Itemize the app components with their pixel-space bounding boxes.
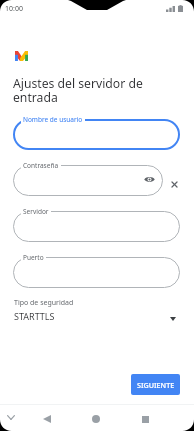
staticText: Tipo de seguridad [14,298,74,308]
button[interactable]: Tipo de seguridad [0,294,194,326]
button[interactable]: Inicio [84,407,108,431]
button[interactable]: Ocultar teclado [1,408,20,427]
button[interactable] [13,119,180,150]
button[interactable] [13,165,163,196]
staticText: Nombre de usuario [23,115,83,124]
staticText: Ajustes del servidor de entrada [13,75,154,106]
staticText: STARTTLS [14,310,55,322]
button[interactable]: Borrar [170,180,179,189]
button[interactable]: Atrás [35,407,59,431]
button[interactable] [13,211,180,242]
button[interactable]: SIGUIENTE [131,374,180,395]
staticText: SIGUIENTE [137,380,175,390]
staticText: 10:00 [5,4,23,14]
staticText: Contraseña [23,161,59,170]
button[interactable] [13,257,180,288]
staticText: Puerto [23,253,44,262]
button[interactable]: Mostrar contraseña [144,176,155,183]
staticText: Servidor [23,207,49,216]
button[interactable]: Recientes [133,407,157,431]
